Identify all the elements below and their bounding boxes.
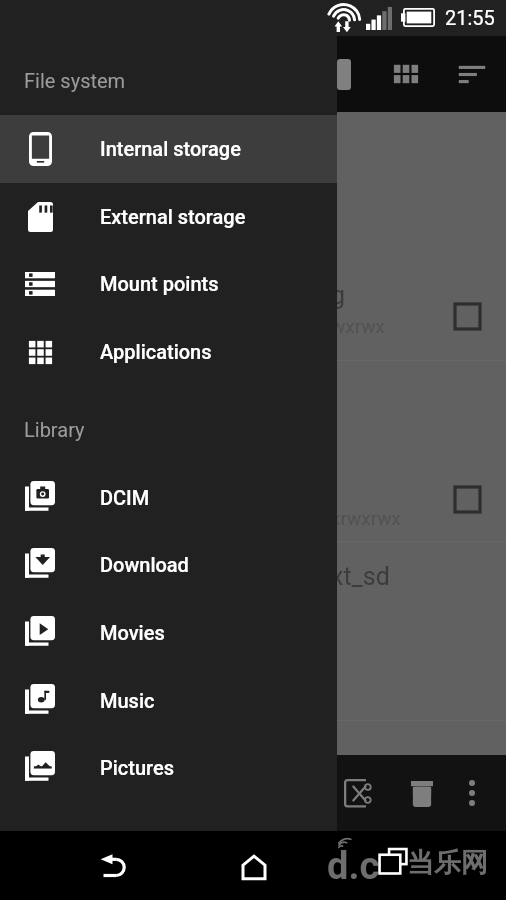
button[interactable]: Recents	[376, 844, 410, 878]
button[interactable]: Applications	[0, 318, 337, 386]
staticText: Pictures	[100, 756, 174, 779]
staticText: xrwxrwx	[331, 507, 402, 529]
staticText: File system	[24, 69, 126, 92]
staticText: 21:55	[445, 6, 495, 29]
button[interactable]: Back	[95, 843, 135, 883]
button[interactable]: Music	[0, 667, 337, 735]
staticText: xt_sd	[331, 562, 390, 591]
staticText: wxrwx	[331, 315, 386, 337]
button[interactable]: Delete	[399, 771, 445, 817]
staticText: 当乐网	[407, 846, 488, 880]
button[interactable]: Grid view	[383, 51, 429, 97]
staticText: Mount points	[100, 272, 219, 295]
staticText: Download	[100, 553, 189, 576]
button[interactable]: Sort	[449, 53, 495, 99]
staticText: Movies	[100, 621, 165, 644]
button[interactable]: Home	[234, 848, 274, 888]
button[interactable]: Internal storage	[0, 115, 337, 183]
button[interactable]: Movies	[0, 599, 337, 667]
staticText: Applications	[100, 340, 212, 363]
button[interactable]: DCIM	[0, 464, 337, 532]
staticText: External storage	[100, 205, 246, 228]
button[interactable]: Cut	[335, 770, 381, 816]
button[interactable]: Select item	[455, 487, 480, 512]
button[interactable]: Pictures	[0, 734, 337, 802]
staticText: Library	[24, 418, 85, 441]
button[interactable]: External storage	[0, 183, 337, 251]
staticText: d.c	[327, 844, 380, 889]
button[interactable]: Download	[0, 531, 337, 599]
staticText: DCIM	[100, 486, 150, 509]
staticText: Internal storage	[100, 137, 241, 160]
button[interactable]: Mount points	[0, 250, 337, 318]
staticText: Music	[100, 689, 155, 712]
button[interactable]: More options	[449, 770, 495, 816]
button[interactable]: Select item	[455, 304, 480, 329]
staticText: g	[331, 281, 346, 310]
